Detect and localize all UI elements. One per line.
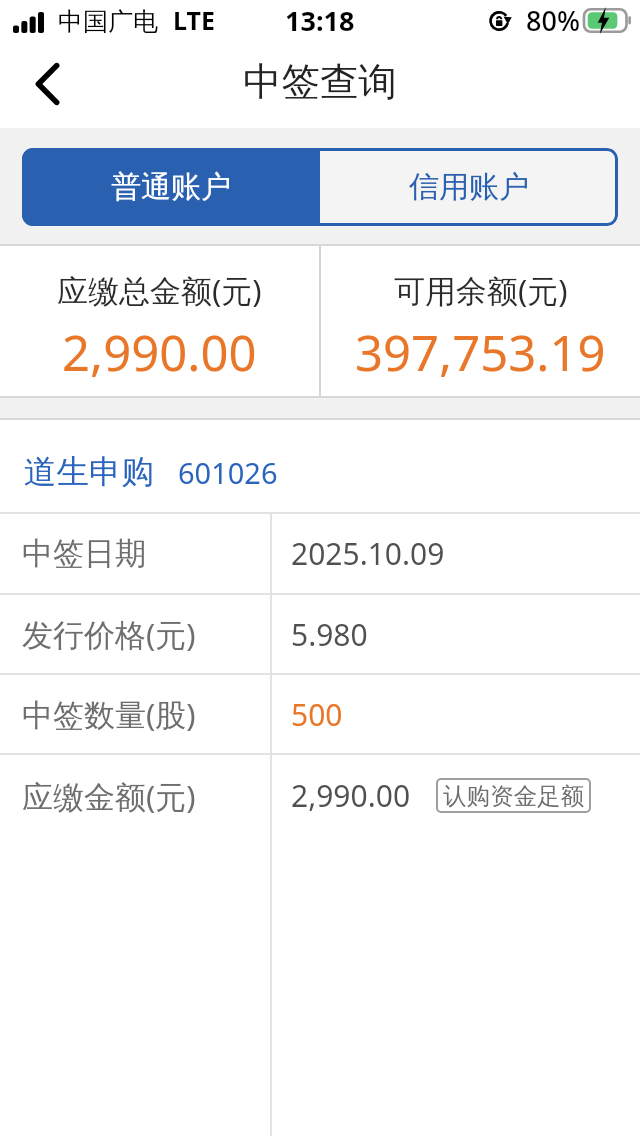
staticText: 80%: [526, 2, 580, 39]
staticText: 中签日期: [22, 534, 146, 573]
staticText: 认购资金足额: [443, 781, 584, 811]
staticText: 2,990.00: [291, 775, 411, 816]
staticText: 中签查询: [243, 58, 397, 107]
staticText: 5.980: [291, 614, 368, 655]
button[interactable]: 信用账户: [320, 148, 618, 226]
staticText: 2025.10.09: [291, 533, 445, 574]
staticText: 应缴金额(元): [22, 775, 196, 817]
staticText: 道生申购: [24, 452, 154, 493]
staticText: LTE: [173, 3, 215, 37]
staticText: 500: [291, 694, 343, 735]
staticText: 可用余额(元): [394, 269, 568, 311]
staticText: 2,990.00: [62, 319, 257, 386]
button[interactable]: Back: [14, 50, 82, 118]
staticText: 中国广电: [58, 6, 158, 37]
staticText: 应缴总金额(元): [57, 269, 262, 311]
staticText: 发行价格(元): [22, 613, 196, 655]
staticText: 中签数量(股): [22, 693, 196, 735]
button[interactable]: 普通账户: [22, 148, 320, 226]
staticText: 397,753.19: [355, 319, 606, 386]
staticText: 13:18: [285, 2, 355, 39]
staticText: 601026: [178, 453, 278, 492]
staticText: 普通账户: [111, 168, 231, 206]
staticText: 信用账户: [409, 168, 529, 206]
